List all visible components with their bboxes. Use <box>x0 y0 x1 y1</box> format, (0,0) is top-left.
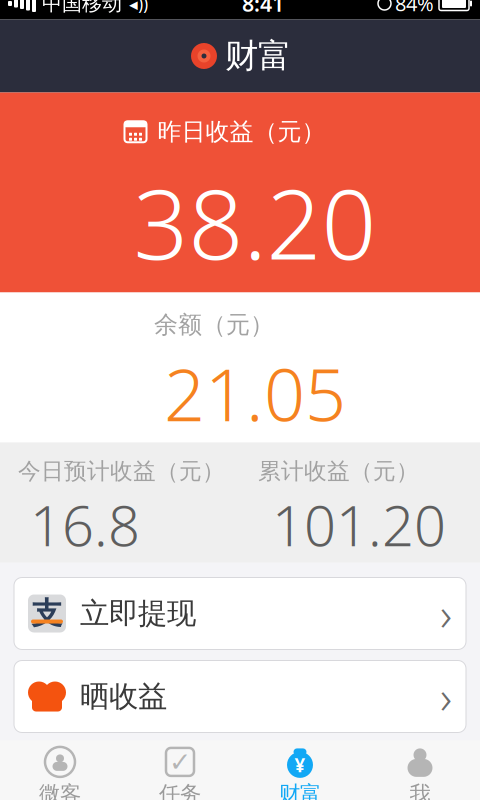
staticText: 我 <box>409 781 430 800</box>
staticText: 昨日收益（元） <box>157 117 325 146</box>
staticText: 今日预计收益（元） <box>18 457 225 485</box>
staticText: 立即提现 <box>80 595 196 631</box>
staticText: 84% <box>395 0 434 17</box>
staticText: 晒收益 <box>80 678 167 714</box>
staticText: ◂)) <box>129 0 148 15</box>
staticText: 中国移动 <box>42 0 122 16</box>
staticText: 累计收益（元） <box>258 457 419 485</box>
staticText: › <box>440 666 452 727</box>
staticText: 支 <box>31 595 62 632</box>
staticText: 38.20 <box>133 158 376 286</box>
staticText: 8:41 <box>242 0 284 18</box>
staticText: 任务 <box>159 781 201 800</box>
staticText: 101.20 <box>272 487 446 562</box>
button[interactable]: ¥ <box>240 740 360 800</box>
button[interactable]: 微客 <box>0 740 120 800</box>
button[interactable]: 支 <box>14 577 466 649</box>
staticText: › <box>440 583 452 644</box>
staticText: ¥ <box>294 752 305 777</box>
staticText: 16.8 <box>30 487 140 562</box>
button[interactable]: ✓ <box>120 740 240 800</box>
button[interactable]: 我 <box>360 740 480 800</box>
staticText: 财富 <box>225 35 291 76</box>
staticText: ✓ <box>169 747 191 777</box>
staticText: 余额（元） <box>154 310 274 339</box>
staticText: 微客 <box>39 781 81 800</box>
button[interactable]: 晒收益 <box>14 660 466 732</box>
staticText: 21.05 <box>164 345 346 441</box>
staticText: 财富 <box>279 781 321 800</box>
